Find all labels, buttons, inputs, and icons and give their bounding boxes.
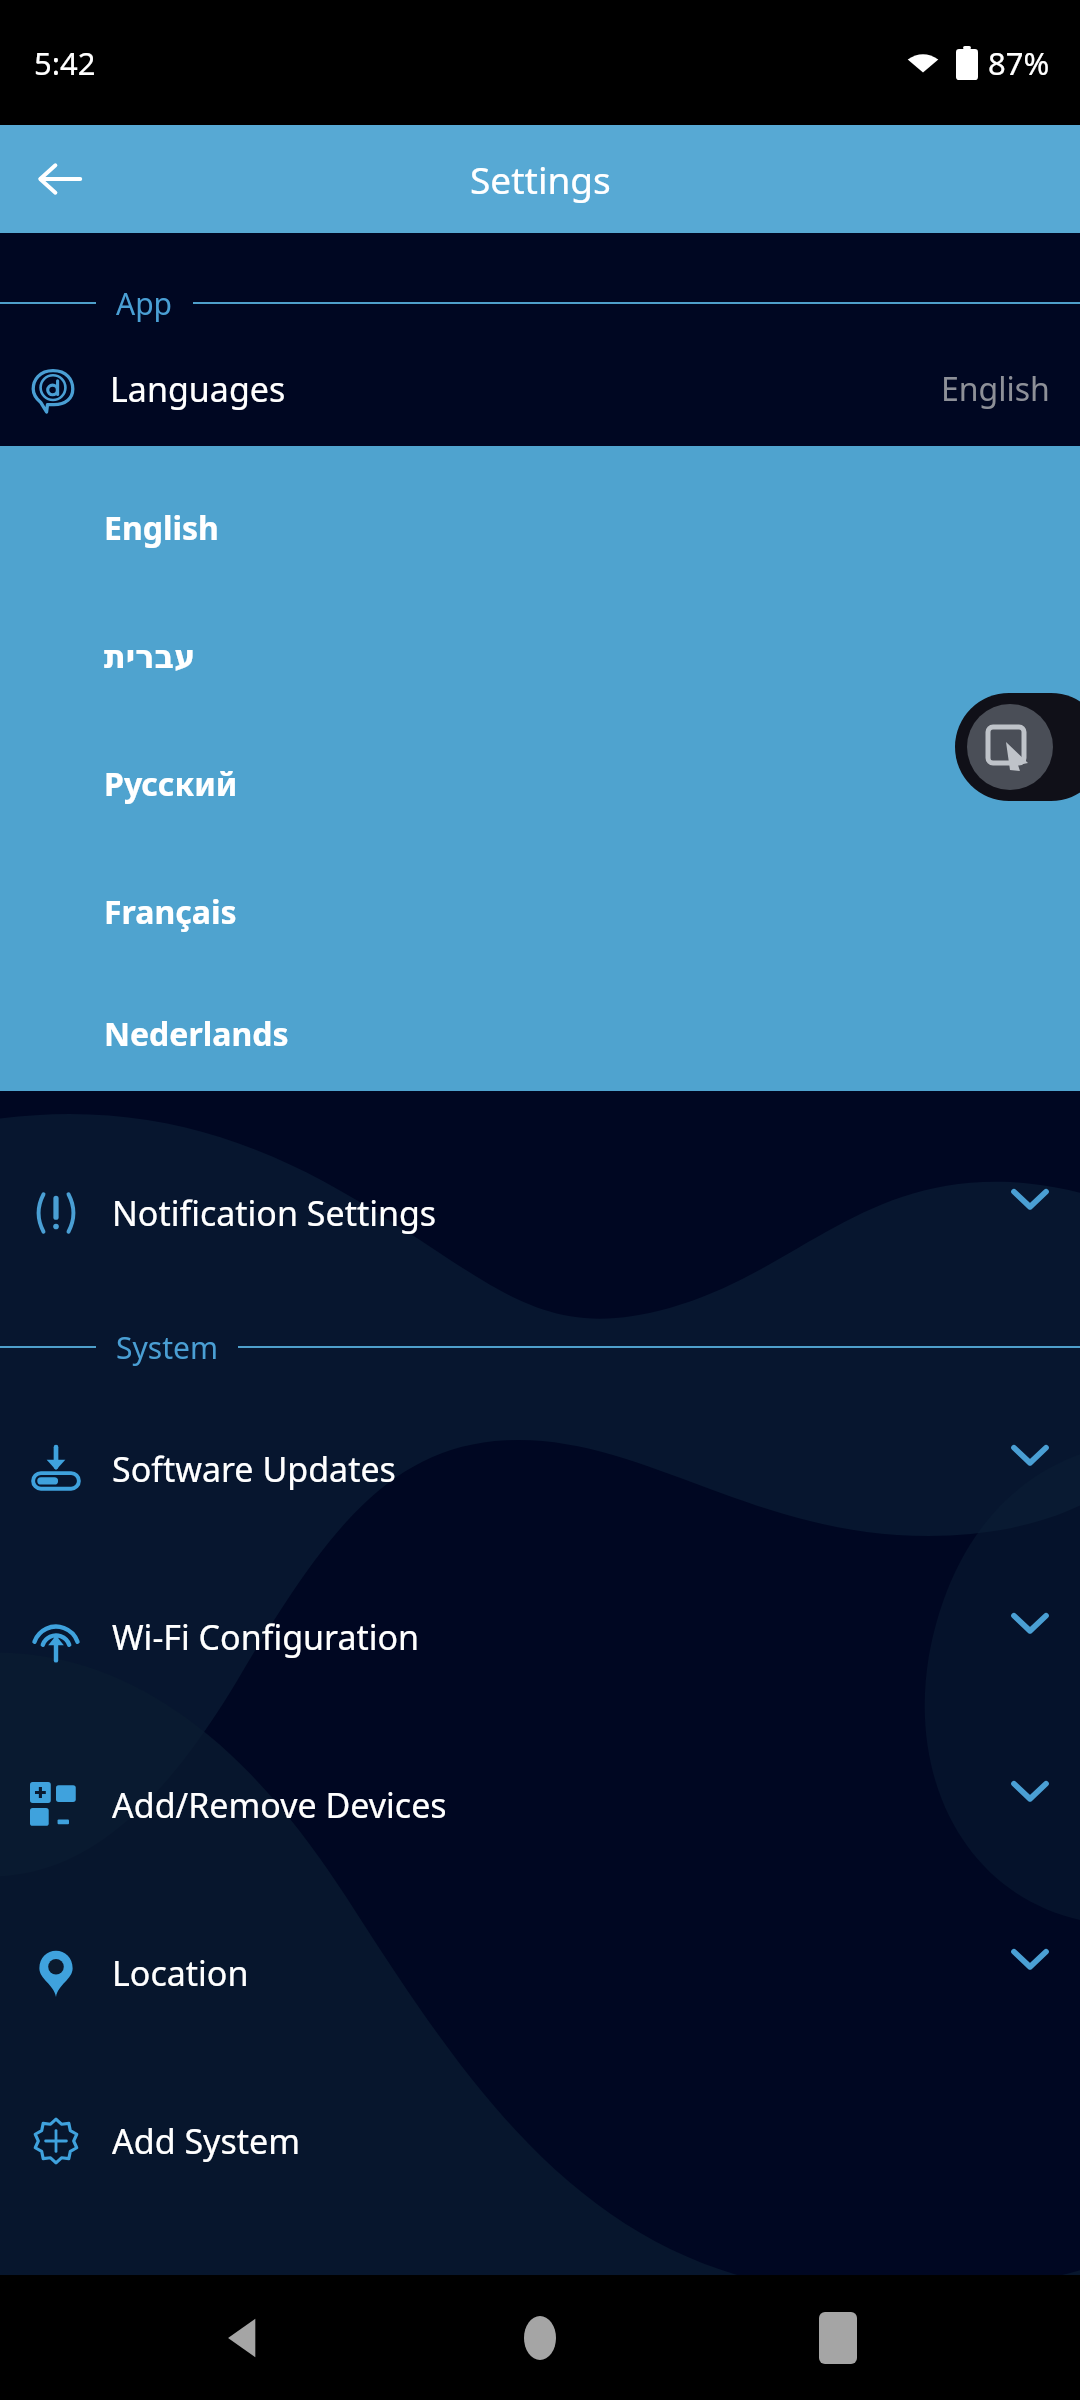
button[interactable]: Screen capture overlay [955, 693, 1080, 801]
staticText: Notification Settings [112, 1190, 437, 1236]
button[interactable]: Back [22, 141, 98, 217]
staticText: Français [104, 890, 237, 934]
button[interactable]: Back [188, 2283, 298, 2393]
button[interactable]: Русский [0, 720, 1080, 848]
button[interactable]: Notification Settings [0, 1129, 1080, 1297]
button[interactable]: עברית [0, 592, 1080, 720]
button[interactable]: Location [0, 1889, 1080, 2057]
button[interactable]: Nederlands [0, 976, 1080, 1091]
staticText: English [941, 367, 1050, 411]
button[interactable]: Wi-Fi Configuration [0, 1553, 1080, 1721]
staticText: Nederlands [104, 1012, 289, 1056]
staticText: App [116, 283, 173, 324]
staticText: English [104, 506, 219, 550]
staticText: עברית [104, 638, 196, 675]
button[interactable]: Add System [0, 2057, 1080, 2225]
button[interactable]: Home [485, 2283, 595, 2393]
staticText: 87% [988, 42, 1050, 84]
staticText: Location [112, 1950, 249, 1996]
staticText: 5:42 [34, 42, 96, 84]
button[interactable]: Recent apps [783, 2283, 893, 2393]
button[interactable]: Languages [0, 331, 1080, 446]
button[interactable]: Français [0, 848, 1080, 976]
staticText: Русский [104, 762, 238, 806]
button[interactable]: Software Updates [0, 1385, 1080, 1553]
staticText: Software Updates [112, 1446, 396, 1492]
button[interactable]: Add/Remove Devices [0, 1721, 1080, 1889]
button[interactable]: English [0, 464, 1080, 592]
staticText: Languages [110, 366, 286, 412]
staticText: System [116, 1327, 218, 1368]
staticText: Add/Remove Devices [112, 1782, 447, 1828]
staticText: Wi-Fi Configuration [112, 1614, 420, 1660]
staticText: Add System [112, 2118, 300, 2164]
staticText: Settings [470, 154, 611, 204]
